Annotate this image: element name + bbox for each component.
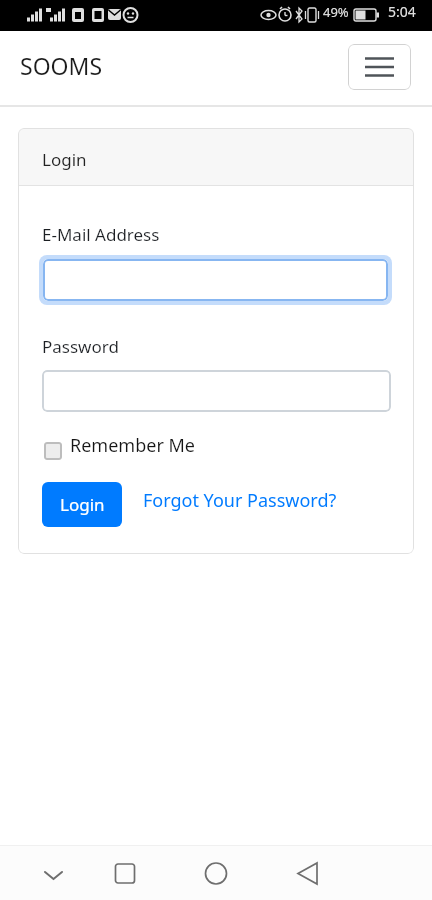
staticText: 5:04	[388, 2, 416, 21]
button[interactable]	[291, 857, 325, 891]
button[interactable]: Forgot Your Password?	[143, 490, 363, 520]
staticText: Password	[42, 335, 119, 358]
staticText: SOOMS	[20, 50, 103, 81]
staticText: 49%	[323, 3, 349, 21]
button[interactable]	[108, 857, 142, 891]
staticText: Forgot Your Password?	[143, 488, 337, 513]
button[interactable]: Remember Me	[44, 438, 214, 466]
button[interactable]	[36, 860, 70, 890]
button[interactable]	[199, 857, 233, 891]
staticText: E-Mail Address	[42, 223, 160, 246]
button[interactable]	[348, 44, 411, 90]
button[interactable]	[42, 370, 391, 412]
staticText: Login	[60, 493, 105, 516]
staticText: Login	[42, 148, 87, 171]
button[interactable]	[39, 255, 392, 305]
staticText: Remember Me	[70, 433, 195, 458]
button[interactable]: Login	[42, 482, 122, 527]
